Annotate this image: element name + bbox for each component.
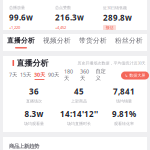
staticText: 近30日销售额 bbox=[103, 5, 127, 10]
staticText: 36 bbox=[29, 86, 39, 97]
staticText: 15天 bbox=[20, 71, 31, 78]
staticText: 历史开播场次数据，平均值统计近30天 bbox=[77, 60, 145, 66]
staticText: 360天 bbox=[80, 68, 89, 81]
staticText: 30天 bbox=[34, 71, 45, 78]
staticText: 14:14'12'' bbox=[60, 108, 98, 119]
staticText: 总播放量 bbox=[9, 5, 25, 10]
staticText: 8.3w bbox=[24, 108, 43, 119]
staticText: 预估 bbox=[105, 25, 113, 30]
button[interactable]: 带货分析 bbox=[75, 36, 111, 49]
staticText: +1,220 bbox=[9, 25, 20, 30]
staticText: 直播场次 bbox=[26, 99, 42, 103]
button[interactable]: 视频分析 bbox=[39, 36, 75, 49]
staticText: 总点赞数 bbox=[55, 5, 71, 10]
staticText: 场均直播时长 bbox=[67, 121, 91, 126]
staticText: 90天 bbox=[48, 71, 59, 78]
staticText: 289.8w bbox=[103, 12, 132, 23]
button[interactable]: 180天 bbox=[62, 71, 75, 80]
staticText: ↳ bbox=[125, 73, 128, 78]
staticText: 216.3w bbox=[55, 12, 84, 23]
staticText: 上架商品 bbox=[71, 99, 87, 103]
staticText: 直播分析 bbox=[17, 58, 49, 68]
staticText: 场均观看量 bbox=[24, 121, 44, 126]
staticText: 自定义 bbox=[95, 68, 105, 81]
staticText: 观看转化率 bbox=[114, 121, 134, 126]
button[interactable]: ↳ bbox=[121, 71, 149, 79]
staticText: 直播分析 bbox=[7, 37, 35, 45]
button[interactable]: 360天 bbox=[78, 71, 91, 80]
staticText: 商品上新趋势 bbox=[9, 143, 39, 150]
staticText: 7,841 bbox=[113, 86, 135, 97]
button[interactable]: 自定义 bbox=[94, 71, 107, 80]
button[interactable]: 直播分析 bbox=[3, 36, 39, 49]
staticText: 7天 bbox=[9, 71, 17, 78]
staticText: 180天 bbox=[64, 68, 73, 81]
button[interactable]: 粉丝分析 bbox=[111, 36, 147, 49]
staticText: 场均销量 bbox=[116, 99, 132, 103]
staticText: 数据大屏 bbox=[129, 73, 145, 78]
staticText: +4,452 bbox=[55, 25, 66, 30]
button[interactable]: 90天 bbox=[48, 71, 59, 80]
staticText: 粉丝分析 bbox=[115, 37, 143, 45]
staticText: 带货分析 bbox=[79, 37, 107, 45]
staticText: 99.6w bbox=[9, 12, 33, 23]
button[interactable]: 15天 bbox=[20, 71, 31, 80]
staticText: 视频分析 bbox=[43, 37, 71, 45]
button[interactable]: 30天 bbox=[34, 71, 45, 80]
button[interactable]: 7天 bbox=[9, 71, 17, 80]
staticText: 45 bbox=[74, 86, 84, 97]
staticText: 9.81% bbox=[112, 108, 136, 119]
